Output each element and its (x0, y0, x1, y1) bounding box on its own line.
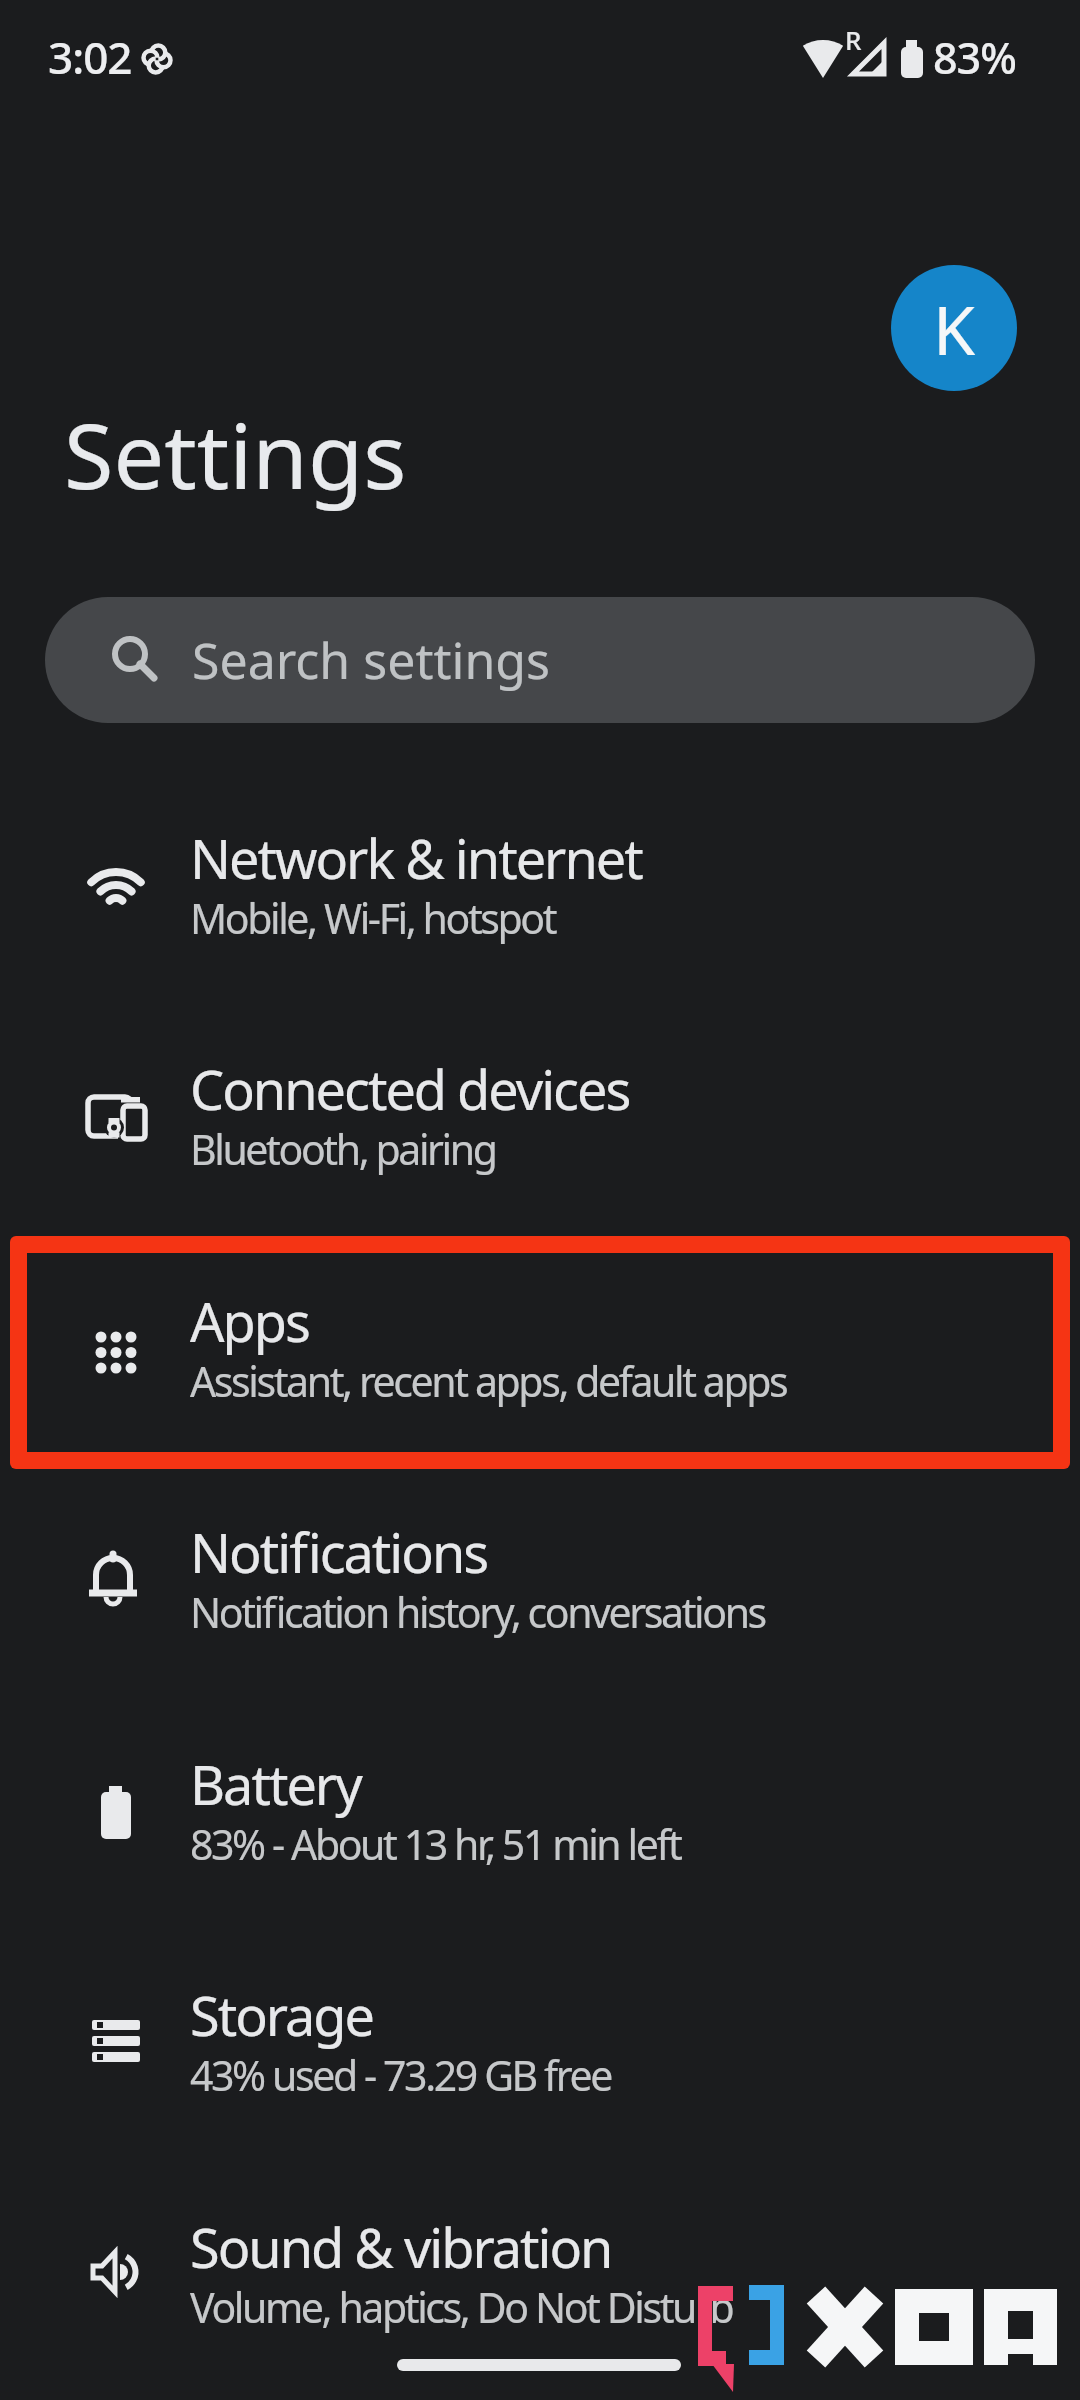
staticText: Search settings (192, 626, 550, 694)
staticText: Settings (64, 393, 407, 516)
button[interactable]: Apps (0, 1237, 1080, 1468)
button[interactable]: Network & internet (0, 774, 1080, 1005)
button[interactable]: Battery (0, 1700, 1080, 1931)
staticText: Volume, haptics, Do Not Disturb (190, 2279, 733, 2335)
staticText: Network & internet (190, 821, 642, 895)
staticText: R (845, 22, 862, 57)
staticText: Mobile, Wi-Fi, hotspot (190, 890, 556, 946)
button[interactable]: Sound & vibration (0, 2163, 1080, 2394)
staticText: Sound & vibration (190, 2210, 612, 2284)
staticText: Apps (190, 1284, 309, 1358)
staticText: Connected devices (190, 1052, 630, 1126)
staticText: Notification history, conversations (190, 1584, 765, 1640)
staticText: 83% (933, 28, 1016, 87)
staticText: Assistant, recent apps, default apps (190, 1353, 787, 1409)
button[interactable]: Notifications (0, 1468, 1080, 1699)
button[interactable]: Connected devices (0, 1005, 1080, 1236)
button[interactable]: Search settings (45, 597, 1035, 723)
staticText: Notifications (190, 1515, 488, 1589)
staticText: Storage (190, 1978, 373, 2052)
staticText: 3:02 (48, 27, 132, 87)
staticText: 43% used - 73.29 GB free (190, 2047, 611, 2103)
staticText: Bluetooth, pairing (190, 1121, 496, 1177)
button[interactable]: K (891, 265, 1017, 391)
staticText: K (933, 282, 976, 375)
staticText: 83% - About 13 hr, 51 min left (190, 1816, 681, 1872)
button[interactable]: Storage (0, 1931, 1080, 2162)
staticText: Battery (190, 1747, 361, 1821)
